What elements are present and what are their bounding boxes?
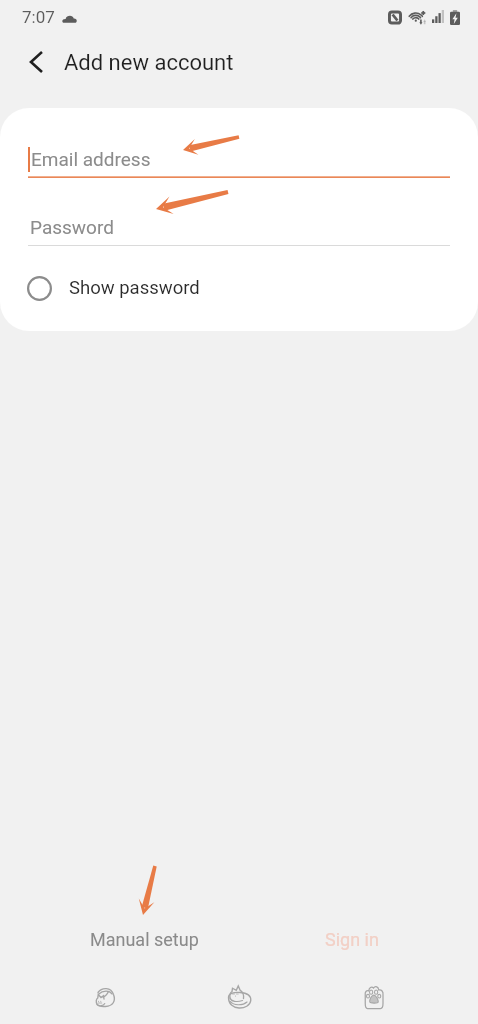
staticText: Sign in — [325, 929, 379, 950]
staticText: Email address — [31, 148, 151, 170]
button[interactable]: Navigate up — [15, 41, 57, 83]
staticText: Password — [30, 216, 114, 238]
staticText: Show password — [69, 277, 200, 299]
staticText: Manual setup — [90, 929, 199, 950]
button[interactable]: Manual setup — [90, 929, 199, 950]
staticText: Add new account — [64, 50, 234, 76]
button[interactable]: Sign in — [325, 929, 379, 950]
button[interactable]: Home — [206, 968, 272, 1024]
button[interactable]: Show password — [0, 265, 478, 311]
button[interactable]: Recent apps — [341, 968, 407, 1024]
staticText: 7:07 — [22, 7, 55, 27]
button[interactable]: Back — [72, 968, 138, 1024]
